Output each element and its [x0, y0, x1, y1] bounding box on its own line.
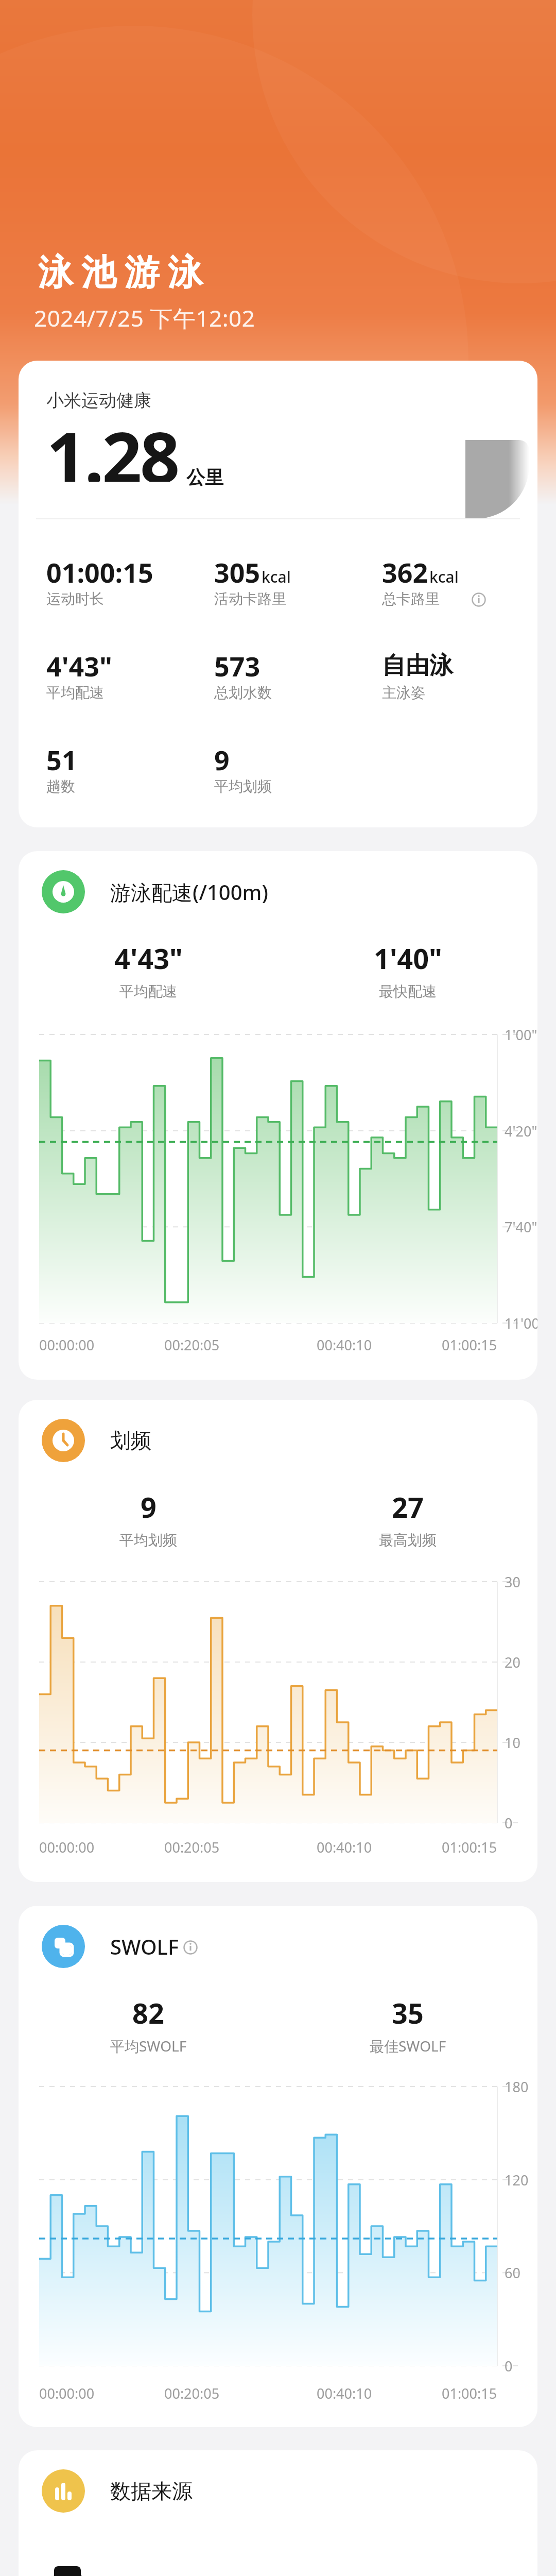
- staticText: 11'00": [505, 1314, 537, 1333]
- staticText: 180: [505, 2077, 529, 2096]
- staticText: 0: [505, 2357, 513, 2376]
- staticText: 运动时长: [46, 590, 104, 608]
- staticText: 总卡路里: [382, 590, 440, 608]
- staticText: 82: [132, 1994, 164, 2032]
- staticText: 总划水数: [214, 684, 272, 702]
- staticText: 数据来源: [110, 2478, 193, 2504]
- button[interactable]: [183, 1940, 198, 1955]
- staticText: 自由泳: [382, 651, 453, 681]
- staticText: 120: [505, 2171, 529, 2190]
- staticText: 游泳配速(/100m): [110, 878, 268, 906]
- staticText: 27: [392, 1488, 424, 1526]
- button[interactable]: [472, 592, 486, 607]
- staticText: 00:20:05: [164, 2384, 220, 2403]
- staticText: 01:00:15: [442, 1335, 497, 1354]
- staticText: 4'43": [114, 939, 183, 977]
- staticText: 平均配速: [119, 982, 177, 1001]
- staticText: 51: [46, 741, 77, 778]
- button[interactable]: 小米手环7 Pro: [49, 2566, 410, 2576]
- staticText: 00:00:00: [39, 1838, 95, 1857]
- staticText: 平均配速: [46, 684, 104, 702]
- staticText: SWOLF: [110, 1933, 179, 1960]
- staticText: 00:40:10: [317, 1335, 372, 1354]
- staticText: 主泳姿: [382, 684, 425, 702]
- staticText: 4'20": [505, 1122, 537, 1141]
- staticText: 01:00:15: [46, 554, 153, 590]
- staticText: 最快配速: [379, 982, 437, 1001]
- staticText: 7'40": [505, 1217, 537, 1236]
- staticText: 最佳SWOLF: [370, 2036, 446, 2056]
- staticText: kcal: [262, 566, 291, 587]
- staticText: 4'43": [46, 648, 112, 684]
- staticText: 01:00:15: [442, 2384, 497, 2403]
- staticText: 1'00": [505, 1025, 537, 1044]
- staticText: 平均划频: [214, 777, 272, 795]
- staticText: 362: [382, 554, 428, 590]
- staticText: kcal: [429, 566, 459, 587]
- staticText: 00:00:00: [39, 2384, 95, 2403]
- staticText: 平均SWOLF: [110, 2036, 187, 2056]
- staticText: 60: [505, 2263, 520, 2282]
- staticText: 00:40:10: [317, 1838, 372, 1857]
- staticText: 小米运动健康: [46, 389, 151, 412]
- staticText: 00:20:05: [164, 1335, 220, 1354]
- staticText: 0: [505, 1814, 513, 1833]
- staticText: 2024/7/25 下午12:02: [34, 302, 255, 333]
- staticText: 20: [505, 1653, 520, 1672]
- staticText: 10: [505, 1733, 520, 1752]
- staticText: 00:40:10: [317, 2384, 372, 2403]
- staticText: 1'40": [374, 939, 442, 977]
- staticText: 9: [141, 1488, 157, 1526]
- staticText: 泳池游泳: [34, 251, 207, 295]
- staticText: 30: [505, 1572, 520, 1591]
- staticText: 35: [392, 1994, 424, 2032]
- staticText: 00:00:00: [39, 1335, 95, 1354]
- staticText: 划频: [110, 1428, 151, 1453]
- staticText: 平均划频: [119, 1531, 177, 1549]
- staticText: 活动卡路里: [214, 590, 286, 608]
- staticText: 573: [214, 648, 260, 684]
- staticText: 1.28: [46, 409, 178, 482]
- staticText: 趟数: [46, 777, 75, 795]
- staticText: 00:20:05: [164, 1838, 220, 1857]
- staticText: 01:00:15: [442, 1838, 497, 1857]
- staticText: 305: [214, 554, 260, 590]
- staticText: 公里: [186, 466, 223, 489]
- staticText: 最高划频: [379, 1531, 437, 1549]
- staticText: 9: [214, 741, 230, 778]
